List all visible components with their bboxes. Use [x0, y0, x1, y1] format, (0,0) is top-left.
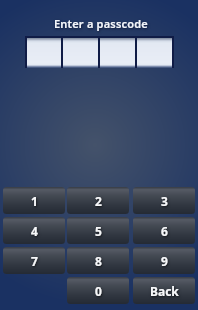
button[interactable]: Digit 8: [67, 247, 129, 274]
staticText: 8: [95, 253, 102, 269]
staticText: 0: [95, 283, 102, 299]
staticText: 4: [31, 223, 38, 239]
staticText: 5: [95, 223, 102, 239]
button[interactable]: Digit 1: [3, 187, 65, 214]
staticText: Back: [150, 283, 179, 299]
staticText: 3: [161, 193, 168, 209]
button[interactable]: Digit 3: [133, 187, 195, 214]
staticText: 7: [31, 253, 38, 269]
button[interactable]: Digit 4: [3, 217, 65, 244]
staticText: Enter a passcode: [2, 16, 198, 31]
staticText: 9: [161, 253, 168, 269]
button[interactable]: Back: [133, 277, 195, 304]
staticText: 6: [161, 223, 168, 239]
button[interactable]: Digit 0: [67, 277, 129, 304]
button[interactable]: Digit 6: [133, 217, 195, 244]
staticText: 2: [95, 193, 102, 209]
button[interactable]: Digit 2: [67, 187, 129, 214]
button[interactable]: Digit 5: [67, 217, 129, 244]
staticText: 1: [31, 193, 38, 209]
button[interactable]: Digit 9: [133, 247, 195, 274]
button[interactable]: Digit 7: [3, 247, 65, 274]
